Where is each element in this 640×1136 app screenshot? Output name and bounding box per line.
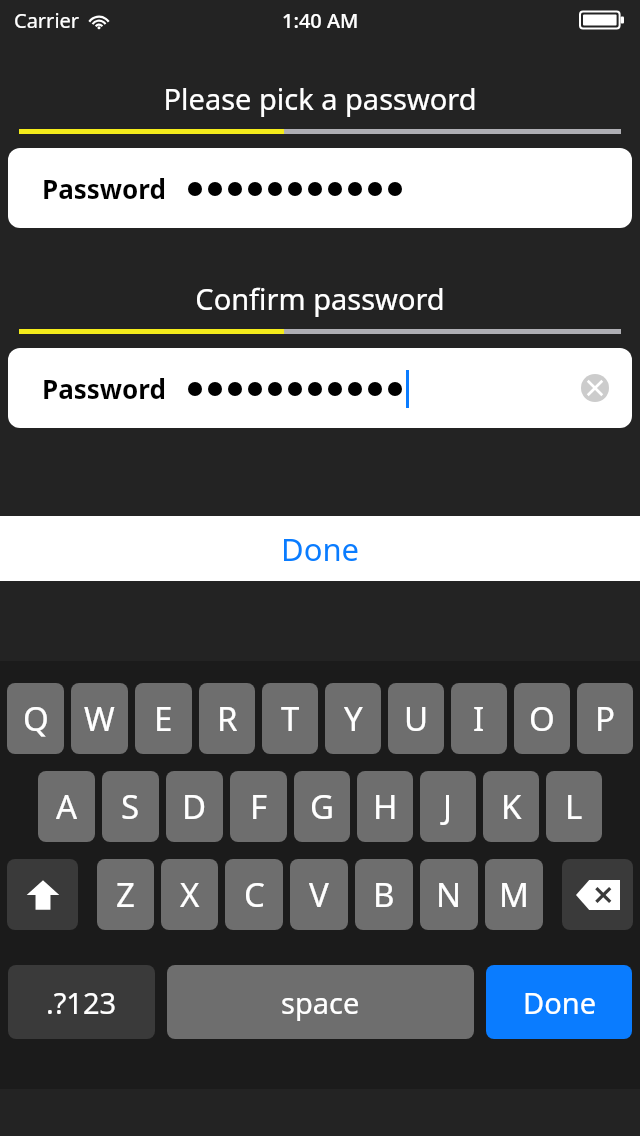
button[interactable]: M [485, 859, 543, 930]
button[interactable]: R [199, 683, 255, 754]
button[interactable]: Clear text [578, 371, 612, 405]
button[interactable]: Y [325, 683, 381, 754]
staticText: V [309, 872, 329, 917]
staticText: F [250, 784, 268, 829]
button[interactable]: Done [0, 516, 640, 581]
button[interactable]: I [451, 683, 507, 754]
button[interactable]: U [388, 683, 444, 754]
staticText: D [182, 784, 207, 829]
staticText: C [244, 872, 265, 917]
button[interactable]: .?123 [8, 965, 155, 1039]
staticText: N [436, 872, 462, 917]
staticText: T [281, 696, 300, 741]
button[interactable]: W [71, 683, 128, 754]
button[interactable]: C [225, 859, 283, 930]
staticText: I [473, 696, 485, 741]
staticText: A [56, 784, 78, 829]
staticText: O [529, 696, 555, 741]
staticText: G [310, 784, 335, 829]
button[interactable]: O [514, 683, 570, 754]
button[interactable]: Z [97, 859, 154, 930]
button[interactable]: V [290, 859, 348, 930]
staticText: Z [116, 872, 135, 917]
button[interactable]: Done [486, 965, 632, 1039]
staticText: J [443, 784, 453, 829]
button[interactable]: N [420, 859, 478, 930]
button[interactable]: H [357, 771, 413, 842]
staticText: Confirm password [0, 279, 640, 318]
button[interactable]: L [546, 771, 602, 842]
staticText: W [84, 696, 115, 741]
staticText: B [373, 872, 395, 917]
button[interactable]: J [420, 771, 476, 842]
staticText: P [595, 696, 615, 741]
staticText: Done [281, 528, 360, 570]
button[interactable]: Backspace [562, 859, 633, 930]
staticText: S [121, 784, 140, 829]
staticText: Carrier [14, 7, 80, 34]
staticText: R [217, 696, 238, 741]
button[interactable]: T [262, 683, 318, 754]
staticText: Y [344, 696, 363, 741]
button[interactable]: A [38, 771, 95, 842]
button[interactable]: Password [8, 348, 632, 428]
staticText: 1:40 AM [282, 7, 359, 34]
button[interactable]: X [161, 859, 218, 930]
staticText: X [180, 872, 200, 917]
button[interactable]: E [135, 683, 192, 754]
staticText: E [154, 696, 173, 741]
staticText: H [373, 784, 398, 829]
staticText: Done [523, 983, 596, 1022]
button[interactable]: F [230, 771, 287, 842]
button[interactable]: Q [7, 683, 64, 754]
button[interactable]: B [355, 859, 413, 930]
staticText: L [565, 784, 583, 829]
staticText: .?123 [46, 983, 117, 1022]
staticText: K [501, 784, 522, 829]
button[interactable]: space [167, 965, 474, 1039]
button[interactable]: Shift [7, 859, 78, 930]
button[interactable]: G [294, 771, 350, 842]
staticText: Q [23, 696, 49, 741]
staticText: Please pick a password [0, 79, 640, 118]
staticText: U [404, 696, 429, 741]
button[interactable]: S [102, 771, 159, 842]
button[interactable]: K [483, 771, 539, 842]
staticText: Password [42, 171, 166, 206]
button[interactable]: D [166, 771, 223, 842]
button[interactable]: P [577, 683, 633, 754]
staticText: Password [42, 371, 166, 406]
button[interactable]: Password [8, 148, 632, 228]
staticText: space [281, 983, 360, 1022]
staticText: M [499, 872, 529, 917]
